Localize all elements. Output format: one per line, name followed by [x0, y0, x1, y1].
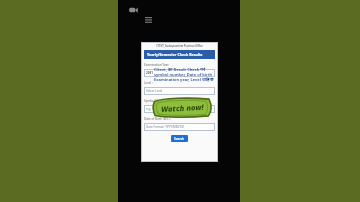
- staticText: Examination year, Level चाहिन्छ: [154, 77, 214, 82]
- staticText: Symbol Number :: [144, 99, 169, 103]
- staticText: Yearly/Semester Check Results: [147, 52, 203, 57]
- staticText: Watch now!: [161, 102, 204, 114]
- staticText: Date of Birth (B.S.) :: [144, 117, 172, 121]
- staticText: Examination Year:: [144, 63, 170, 67]
- staticText: e.g. 10006734: [146, 107, 166, 111]
- staticText: Date Format: YYYY/MM/DD: [146, 125, 185, 129]
- button[interactable]: 2081: [144, 69, 215, 77]
- staticText: symbol number, Date of birth: [154, 72, 213, 77]
- button[interactable]: Yearly/Semester Check Results: [144, 50, 215, 59]
- staticText: Select Level: [146, 89, 163, 93]
- staticText: 2081: [146, 71, 153, 75]
- button[interactable]: Search: [171, 135, 188, 142]
- button[interactable]: e.g. 10006734: [144, 105, 215, 113]
- button[interactable]: Recording indicator: [128, 5, 138, 15]
- button[interactable]: Watch now: [152, 97, 212, 118]
- staticText: Search: [174, 137, 185, 141]
- button[interactable]: Date Format: YYYY/MM/DD: [144, 123, 215, 131]
- button[interactable]: Select Level: [144, 87, 215, 95]
- staticText: CTEVT, Sudurpaschim Province Office: [144, 44, 215, 48]
- button[interactable]: Menu: [145, 17, 152, 24]
- staticText: Level :: [144, 81, 153, 85]
- staticText: Cltevt, का Result Check गर्न: [154, 67, 206, 72]
